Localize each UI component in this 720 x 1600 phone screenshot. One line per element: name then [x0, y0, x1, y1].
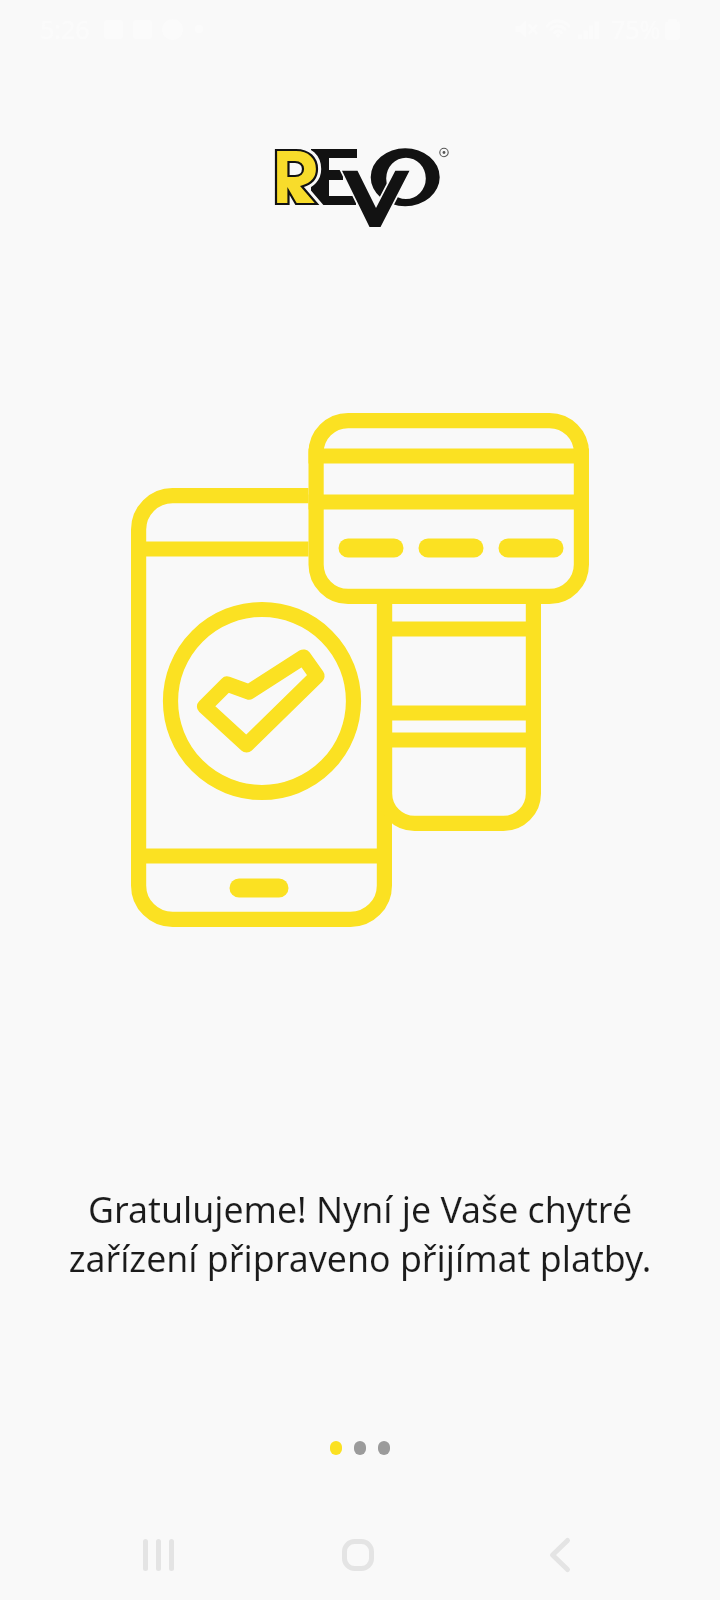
button[interactable]: Page 2 — [354, 1441, 366, 1455]
button[interactable]: Home — [318, 1515, 398, 1595]
button[interactable]: Page 1 — [330, 1441, 342, 1455]
button[interactable]: Page 3 — [378, 1441, 390, 1455]
button[interactable]: Recent apps — [118, 1515, 198, 1595]
button[interactable]: Back — [520, 1515, 600, 1595]
staticText: Gratulujeme! Nyní je Vaše chytré zařízen… — [0, 1185, 720, 1283]
